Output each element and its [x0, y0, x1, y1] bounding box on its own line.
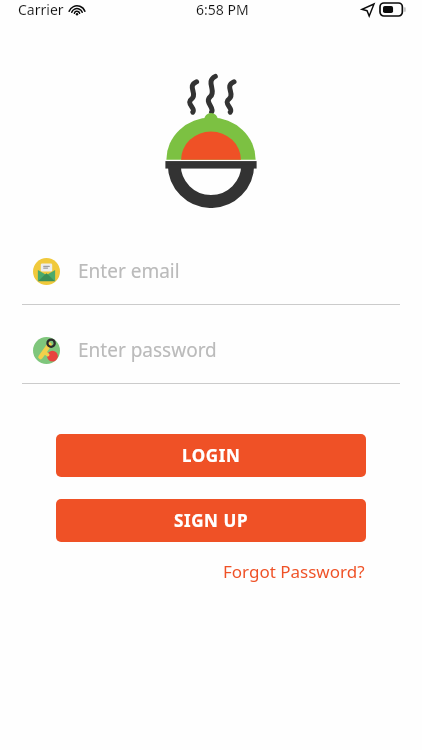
- staticText: Enter email: [78, 258, 180, 284]
- button[interactable]: Email: [0, 248, 422, 305]
- button[interactable]: Forgot Password?: [219, 554, 369, 589]
- other: Password: [33, 337, 60, 364]
- other: Email: [33, 258, 60, 285]
- staticText: Enter password: [78, 337, 217, 363]
- staticText: Forgot Password?: [223, 560, 365, 583]
- staticText: SIGN UP: [174, 509, 249, 532]
- staticText: LOGIN: [182, 444, 241, 467]
- button[interactable]: Password: [0, 327, 422, 384]
- button[interactable]: LOGIN: [56, 434, 366, 477]
- staticText: 6:58 PM: [196, 0, 249, 19]
- staticText: Carrier: [18, 0, 64, 19]
- button[interactable]: SIGN UP: [56, 499, 366, 542]
